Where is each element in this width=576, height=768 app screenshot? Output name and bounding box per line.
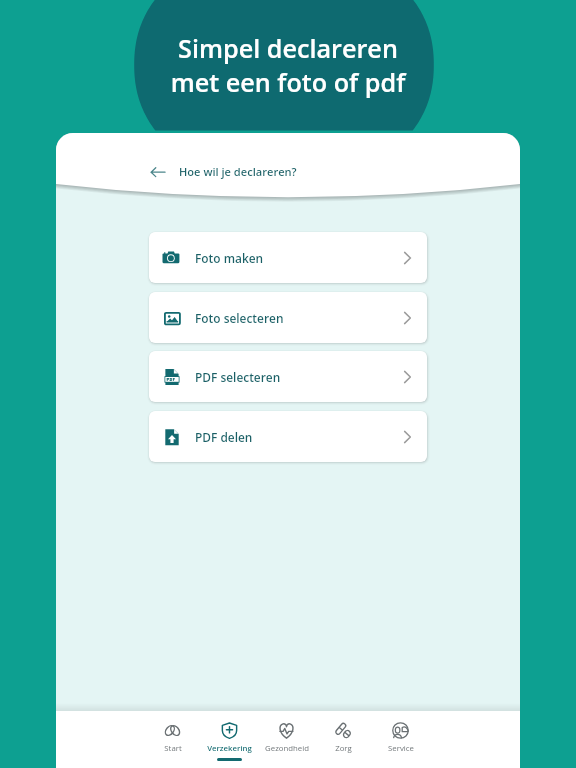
staticText: PDF selecteren — [195, 369, 281, 385]
button[interactable]: PDF delen — [149, 411, 427, 462]
button[interactable]: Start — [144, 711, 201, 768]
staticText: Verzekering — [207, 743, 252, 754]
button[interactable]: Terug — [144, 158, 172, 186]
staticText: Service — [388, 743, 414, 754]
button[interactable]: PDF selecteren — [149, 351, 427, 402]
staticText: Zorg — [335, 743, 352, 754]
staticText: Hoe wil je declareren? — [179, 164, 297, 179]
button[interactable]: Foto selecteren — [149, 292, 427, 343]
staticText: Gezondheid — [265, 743, 309, 754]
button[interactable]: Service — [372, 711, 429, 768]
staticText: PDF delen — [195, 429, 253, 445]
button[interactable]: Verzekering — [201, 711, 258, 768]
staticText: Foto maken — [195, 250, 264, 266]
staticText: Foto selecteren — [195, 310, 284, 326]
button[interactable]: Foto maken — [149, 232, 427, 283]
staticText: Simpel declareren met een foto of pdf — [0, 31, 576, 100]
button[interactable]: Gezondheid — [258, 711, 315, 768]
button[interactable]: Zorg — [315, 711, 372, 768]
staticText: Start — [164, 743, 182, 754]
